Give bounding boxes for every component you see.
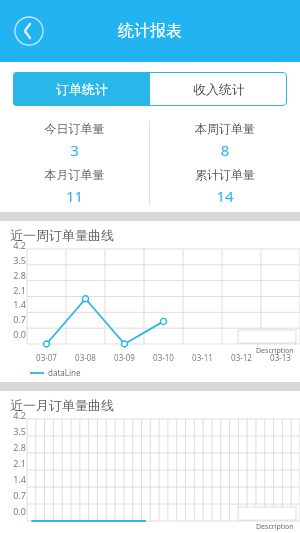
staticText: 近一月订单量曲线: [10, 397, 300, 413]
staticText: Description: [256, 346, 294, 356]
staticText: 今日订单量: [0, 121, 149, 136]
staticText: 03-07: [27, 352, 66, 363]
staticText: 03-08: [66, 352, 105, 363]
staticText: 收入统计: [193, 81, 245, 97]
staticText: 1.4: [0, 473, 26, 485]
button[interactable]: Back: [12, 14, 46, 48]
staticText: 4.2: [0, 409, 26, 421]
staticText: 订单统计: [56, 81, 108, 97]
staticText: 本月订单量: [0, 167, 149, 182]
staticText: 14: [150, 186, 300, 206]
staticText: 2.1: [0, 457, 26, 469]
staticText: 03-11: [183, 352, 222, 363]
staticText: 2.1: [0, 284, 26, 296]
staticText: Description: [256, 522, 294, 532]
staticText: dataLine: [48, 367, 81, 378]
staticText: 1.4: [0, 298, 26, 310]
staticText: 本周订单量: [150, 121, 300, 136]
staticText: 03-09: [105, 352, 144, 363]
staticText: 2.8: [0, 269, 26, 281]
staticText: 03-13: [261, 352, 300, 363]
staticText: 2.8: [0, 441, 26, 453]
staticText: 03-10: [144, 352, 183, 363]
staticText: 3: [0, 140, 149, 160]
staticText: 8: [150, 140, 300, 160]
staticText: 11: [0, 186, 149, 206]
button[interactable]: 订单统计: [13, 72, 150, 106]
staticText: 0.0: [0, 328, 26, 340]
staticText: 3.5: [0, 254, 26, 266]
staticText: 3.5: [0, 425, 26, 437]
button[interactable]: 收入统计: [150, 72, 287, 106]
staticText: 0.7: [0, 489, 26, 501]
staticText: 03-12: [222, 352, 261, 363]
staticText: 累计订单量: [150, 167, 300, 182]
staticText: 0.0: [0, 505, 26, 517]
staticText: 0.7: [0, 313, 26, 325]
staticText: 4.2: [0, 239, 26, 251]
staticText: 统计报表: [118, 21, 182, 41]
staticText: 近一周订单量曲线: [10, 227, 300, 243]
